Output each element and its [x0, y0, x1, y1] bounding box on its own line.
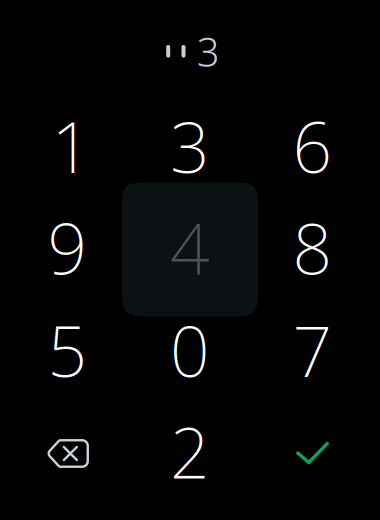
button[interactable]: Confirm [251, 401, 373, 501]
button[interactable]: 0 [129, 300, 251, 400]
button[interactable]: 8 [251, 197, 373, 297]
button[interactable]: 1 [6, 96, 128, 196]
staticText: 2 [170, 405, 210, 498]
staticText: 7 [292, 304, 332, 396]
button[interactable]: 3 [129, 96, 251, 196]
staticText: 6 [292, 100, 332, 192]
staticText: 1 [51, 100, 91, 192]
staticText: 3 [197, 25, 220, 78]
button[interactable]: 7 [251, 300, 373, 400]
button[interactable]: 5 [6, 300, 128, 400]
staticText: 3 [170, 100, 210, 192]
button[interactable]: 9 [6, 197, 128, 297]
staticText: 4 [170, 201, 210, 294]
button[interactable]: 2 [129, 401, 251, 501]
staticText: 9 [47, 201, 87, 294]
button[interactable]: Delete [6, 401, 128, 501]
staticText: 5 [47, 304, 87, 396]
button[interactable]: 6 [251, 96, 373, 196]
staticText: 8 [292, 201, 332, 294]
staticText: 0 [170, 304, 210, 396]
button[interactable]: 4 [122, 179, 258, 315]
